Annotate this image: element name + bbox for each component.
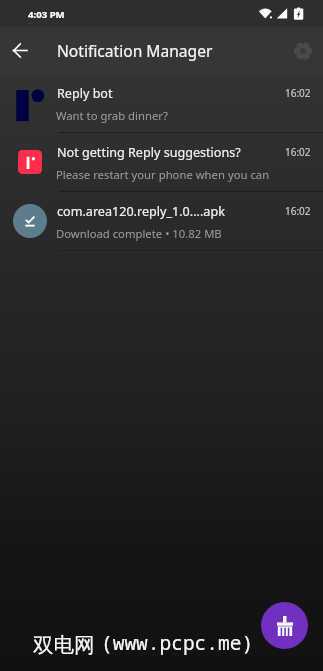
staticText: 16:02 [285,86,311,100]
button[interactable]: Reply bot [0,74,323,132]
button[interactable]: Clear all notifications [261,602,308,649]
staticText: Not getting Reply suggestions? [57,144,282,161]
staticText: com.area120.reply_1.0....apk [57,203,282,220]
staticText: Want to grab dinner? [56,108,274,123]
staticText: 4:03 PM [28,8,65,21]
staticText: Reply bot [57,85,282,102]
button[interactable]: Settings [283,27,323,74]
staticText: Notification Manager [57,40,213,61]
staticText: 16:02 [285,204,311,218]
staticText: (www.pcpc.me) [101,629,254,656]
staticText: 16:02 [285,145,311,159]
staticText: Download complete • 10.82 MB [56,226,274,241]
staticText: 双电网 [33,632,95,658]
button[interactable]: com.area120.reply_1.0....apk [0,192,323,250]
staticText: Please restart your phone when you can [56,167,274,182]
button[interactable]: Back [0,27,40,74]
button[interactable]: Not getting Reply suggestions? [0,133,323,191]
